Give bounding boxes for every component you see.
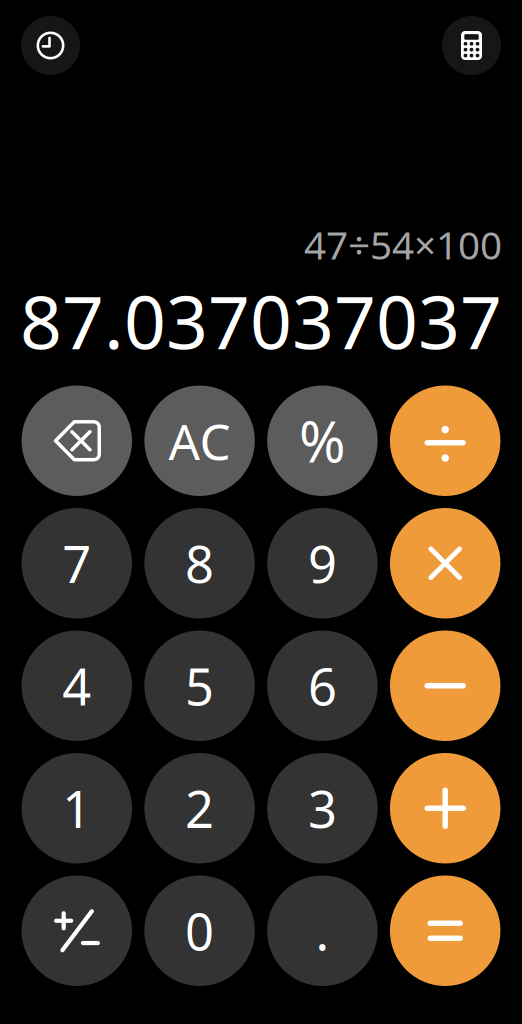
button[interactable]: History <box>21 16 80 75</box>
button[interactable]: Multiply <box>390 508 500 618</box>
staticText: 7 <box>62 530 91 597</box>
button[interactable]: 4 <box>22 630 132 741</box>
staticText: 2 <box>185 775 214 842</box>
button[interactable]: Delete <box>22 385 132 496</box>
staticText: 87.037037037 <box>20 272 502 369</box>
button[interactable]: Add <box>390 753 500 863</box>
button[interactable]: 7 <box>22 508 132 618</box>
staticText: 6 <box>308 652 337 719</box>
staticText: 9 <box>308 530 337 597</box>
staticText: 4 <box>62 652 91 719</box>
staticText: 0 <box>185 897 214 964</box>
button[interactable]: 3 <box>267 753 378 863</box>
button[interactable]: 8 <box>144 508 255 618</box>
staticText: . <box>315 897 329 964</box>
button[interactable]: 5 <box>144 630 255 741</box>
button[interactable]: Divide <box>390 385 500 496</box>
button[interactable]: Subtract <box>390 630 500 741</box>
staticText: 3 <box>308 775 337 842</box>
button[interactable]: 9 <box>267 508 378 618</box>
button[interactable]: % <box>267 385 378 496</box>
button[interactable]: Equals <box>390 875 500 986</box>
staticText: % <box>299 404 346 478</box>
staticText: 47÷54×100 <box>304 219 502 270</box>
button[interactable]: 1 <box>22 753 132 863</box>
button[interactable]: 0 <box>144 875 255 986</box>
button[interactable]: . <box>267 875 378 986</box>
button[interactable]: AC <box>144 385 255 496</box>
button[interactable]: 2 <box>144 753 255 863</box>
button[interactable]: Toggle sign <box>22 875 132 986</box>
button[interactable]: Calculator <box>442 16 501 75</box>
staticText: 5 <box>185 652 214 719</box>
staticText: AC <box>169 408 231 473</box>
staticText: 8 <box>185 530 214 597</box>
staticText: 1 <box>62 775 91 842</box>
button[interactable]: 6 <box>267 630 378 741</box>
